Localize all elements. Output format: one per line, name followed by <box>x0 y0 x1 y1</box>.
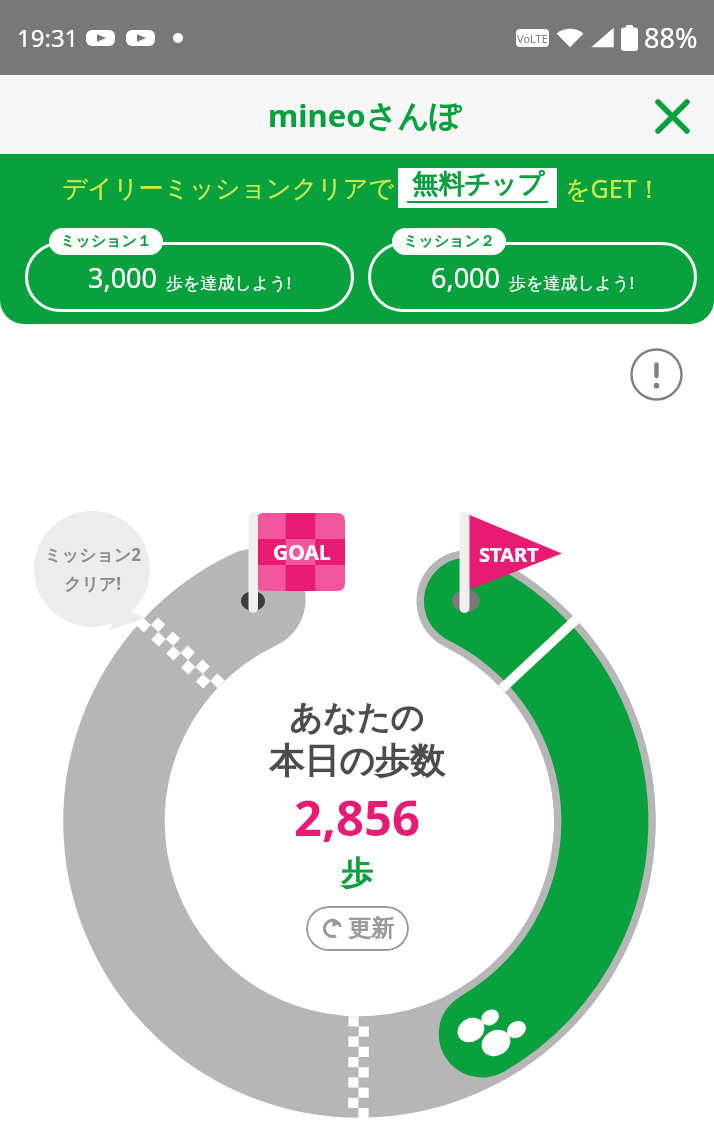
staticText: 6,000 <box>431 259 501 296</box>
button[interactable]: 無料チップ <box>398 168 557 208</box>
staticText: 歩 <box>341 853 373 893</box>
staticText: ミッション１ <box>60 232 152 251</box>
staticText: 更新 <box>348 914 394 943</box>
staticText: デイリーミッションクリアで <box>62 173 395 204</box>
staticText: 2,856 <box>294 784 421 851</box>
staticText: 3,000 <box>88 259 158 296</box>
staticText: 本日の歩数 <box>269 739 445 783</box>
staticText: をGET！ <box>565 171 662 205</box>
button[interactable]: 3,000 <box>25 242 354 312</box>
button[interactable]: Information <box>630 348 683 401</box>
button[interactable]: 更新 <box>306 906 409 951</box>
staticText: あなたの <box>289 697 425 739</box>
staticText: ミッション２ <box>403 232 495 251</box>
staticText: START <box>479 541 539 568</box>
staticText: 無料チップ <box>412 168 544 201</box>
staticText: mineoさんぽ <box>268 94 461 136</box>
staticText: ミッション2 <box>44 543 141 566</box>
staticText: クリア! <box>64 572 121 595</box>
staticText: 19:31 <box>17 21 79 54</box>
button[interactable]: 6,000 <box>368 242 697 312</box>
staticText: 88% <box>644 19 698 56</box>
staticText: 歩を達成しよう! <box>166 271 292 294</box>
button[interactable]: Close <box>648 92 696 140</box>
staticText: VoLTE <box>517 31 548 46</box>
staticText: GOAL <box>273 538 331 567</box>
staticText: 歩を達成しよう! <box>509 271 635 294</box>
